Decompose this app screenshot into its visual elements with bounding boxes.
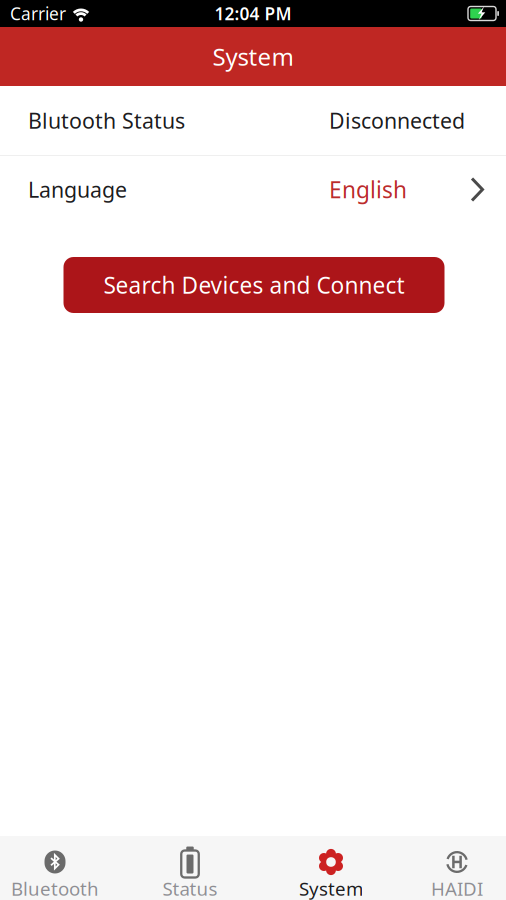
staticText: Search Devices and Connect bbox=[103, 270, 404, 300]
staticText: System bbox=[212, 41, 293, 72]
staticText: Disconnected bbox=[329, 106, 465, 135]
button[interactable]: Bluetooth bbox=[0, 836, 110, 900]
button[interactable]: Blutooth Status bbox=[0, 86, 506, 155]
button[interactable]: Status bbox=[110, 836, 270, 900]
staticText: Language bbox=[28, 175, 127, 204]
button[interactable]: System bbox=[270, 836, 392, 900]
staticText: System bbox=[299, 876, 363, 900]
button[interactable]: HAIDI bbox=[392, 836, 506, 900]
button[interactable]: Language bbox=[0, 156, 506, 223]
staticText: English bbox=[329, 174, 407, 204]
staticText: 12:04 PM bbox=[214, 2, 291, 25]
staticText: Blutooth Status bbox=[28, 106, 185, 135]
staticText: Bluetooth bbox=[11, 876, 99, 900]
staticText: Carrier bbox=[10, 2, 66, 25]
staticText: HAIDI bbox=[431, 876, 483, 900]
staticText: Status bbox=[162, 876, 217, 900]
button[interactable]: Search Devices and Connect bbox=[63, 257, 444, 313]
